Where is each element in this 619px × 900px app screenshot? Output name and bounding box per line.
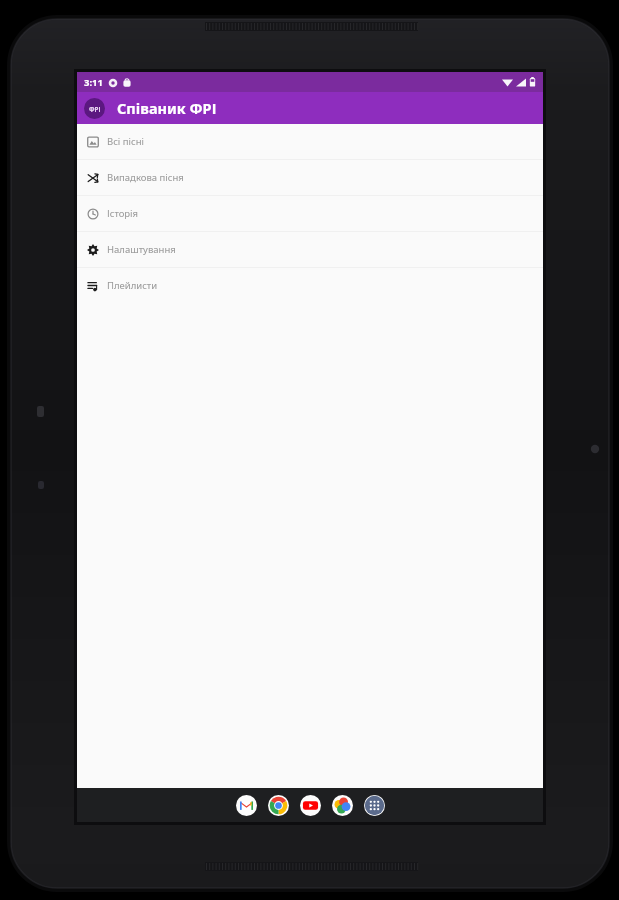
staticText: Всі пісні [107,135,144,148]
button[interactable]: Плейлисти [77,268,543,303]
button[interactable]: Логотип ФРІ [84,98,105,119]
button[interactable]: Gmail [236,795,257,816]
staticText: ФРІ [89,105,101,113]
button[interactable]: Налаштування [77,232,543,267]
button[interactable]: Chrome [268,795,289,816]
button[interactable]: Меню програм [364,795,385,816]
staticText: Історія [107,207,139,220]
button[interactable]: Історія [77,196,543,231]
staticText: Плейлисти [107,279,158,292]
button[interactable]: Всі пісні [77,124,543,159]
button[interactable]: Photos [332,795,353,816]
staticText: Налаштування [107,243,176,256]
staticText: 3:11 [84,76,103,89]
button[interactable]: Випадкова пісня [77,160,543,195]
staticText: Співаник ФРІ [117,98,217,118]
button[interactable]: YouTube [300,795,321,816]
staticText: Випадкова пісня [107,171,184,184]
